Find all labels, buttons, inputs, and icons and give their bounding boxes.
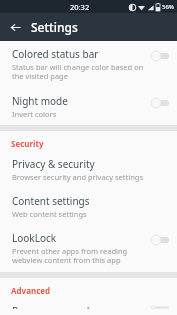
button[interactable]: Toggle Night mode (149, 96, 171, 110)
staticText: Invert colors (12, 109, 57, 119)
staticText: 20:32 (70, 2, 90, 12)
staticText: Night mode (12, 94, 68, 108)
button[interactable]: Night mode (0, 88, 177, 125)
staticText: Content settings (12, 194, 90, 208)
staticText: Browser security and privacy settings (12, 172, 144, 182)
button[interactable]: Privacy & security (0, 151, 177, 188)
staticText: Security (11, 138, 44, 149)
button[interactable]: Power save mode (0, 298, 177, 315)
button[interactable]: Toggle LookLock (149, 233, 171, 247)
staticText: Web content settings (12, 209, 87, 219)
staticText: 56% (162, 3, 174, 11)
staticText: Advanced (11, 285, 51, 296)
button[interactable]: Toggle Colored status bar (149, 49, 171, 63)
button[interactable]: Content settings (0, 188, 177, 225)
button[interactable]: Back (5, 17, 25, 37)
staticText: Prevent other apps from reading webview … (12, 246, 145, 266)
staticText: Status bar will change color based on th… (12, 62, 145, 82)
staticText: Settings (31, 19, 78, 35)
button[interactable]: LookLock (0, 225, 177, 272)
button[interactable]: Toggle Power save mode (149, 306, 171, 309)
staticText: LookLock (12, 231, 57, 245)
staticText: Power save mode (12, 304, 96, 309)
staticText: Colored status bar (12, 47, 99, 61)
staticText: Privacy & security (12, 157, 95, 171)
button[interactable]: Colored status bar (0, 41, 177, 88)
